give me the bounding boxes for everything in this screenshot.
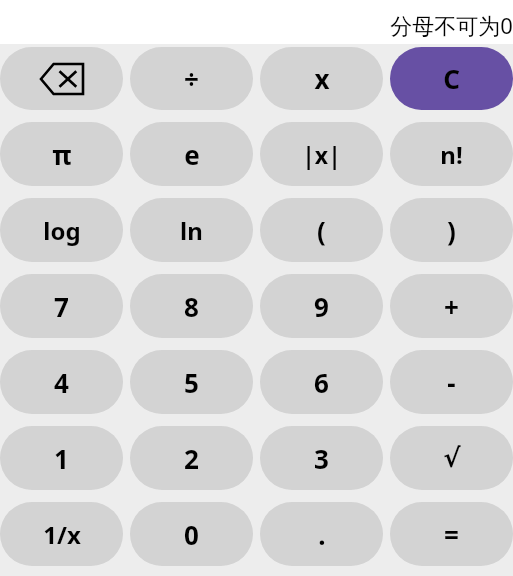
staticText: 2 [184,441,199,476]
button[interactable]: 0 [130,502,253,566]
button[interactable]: n! [390,122,513,186]
staticText: π [52,137,72,172]
staticText: 7 [54,289,69,324]
staticText: 5 [184,365,199,400]
staticText: 4 [54,365,69,400]
button[interactable]: 4 [0,350,123,414]
staticText: 1/x [43,518,81,551]
button[interactable]: Backspace [0,47,123,110]
button[interactable]: 1/x [0,502,123,566]
staticText: |x| [302,139,341,170]
staticText: 1 [54,441,69,476]
button[interactable]: 8 [130,274,253,338]
button[interactable]: π [0,122,123,186]
staticText: 分母不可为0! [390,10,513,40]
button[interactable]: . [260,502,383,566]
staticText: ln [180,214,203,247]
button[interactable]: e [130,122,253,186]
staticText: e [184,137,200,172]
button[interactable]: ( [260,198,383,262]
button[interactable]: ) [390,198,513,262]
staticText: ) [447,213,456,248]
button[interactable]: = [390,502,513,566]
button[interactable]: ÷ [130,47,253,110]
button[interactable]: 6 [260,350,383,414]
button[interactable]: ln [130,198,253,262]
staticText: log [43,214,81,247]
button[interactable]: + [390,274,513,338]
staticText: 0 [184,517,199,552]
staticText: 8 [184,289,199,324]
staticText: 6 [314,365,329,400]
staticText: n! [440,138,463,171]
staticText: + [444,289,459,324]
button[interactable]: - [390,350,513,414]
button[interactable]: 7 [0,274,123,338]
button[interactable]: 3 [260,426,383,490]
button[interactable]: 2 [130,426,253,490]
staticText: ( [317,213,326,248]
button[interactable]: 5 [130,350,253,414]
staticText: . [318,517,326,552]
staticText: √ [443,443,461,473]
button[interactable]: x [260,47,383,110]
button[interactable]: √ [390,426,513,490]
staticText: ÷ [184,61,199,96]
button[interactable]: log [0,198,123,262]
staticText: 3 [314,441,329,476]
staticText: x [314,61,330,96]
button[interactable]: C [390,47,513,110]
staticText: = [444,517,459,552]
button[interactable]: 1 [0,426,123,490]
button[interactable]: 9 [260,274,383,338]
staticText: C [443,61,460,96]
staticText: - [447,365,456,400]
staticText: 9 [314,289,329,324]
button[interactable]: |x| [260,122,383,186]
